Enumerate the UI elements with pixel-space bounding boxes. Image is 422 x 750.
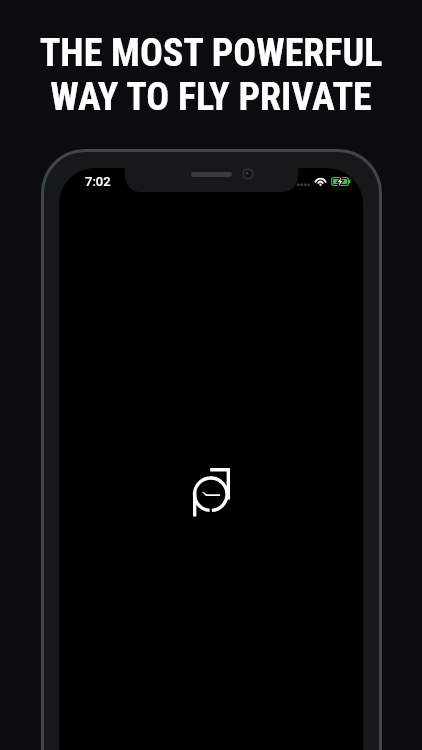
staticText: 7:02 xyxy=(85,174,111,189)
staticText: THE MOST POWERFUL xyxy=(0,31,422,76)
button[interactable]: Private jet app logo xyxy=(193,468,230,517)
staticText: WAY TO FLY PRIVATE xyxy=(0,75,422,120)
